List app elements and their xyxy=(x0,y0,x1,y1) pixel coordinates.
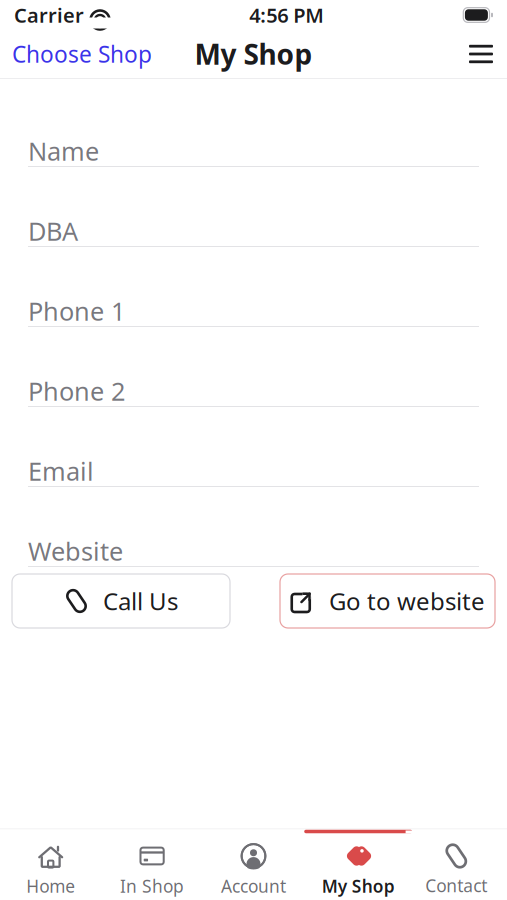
button[interactable]: Home xyxy=(0,829,101,900)
staticText: Phone 2 xyxy=(28,374,125,408)
staticText: In Shop xyxy=(120,874,184,897)
staticText: DBA xyxy=(28,214,78,248)
staticText: Go to website xyxy=(329,585,485,617)
staticText: Email xyxy=(28,454,94,488)
button[interactable]: Menu xyxy=(455,33,507,75)
button[interactable]: Choose Shop xyxy=(0,29,164,79)
staticText: My Shop xyxy=(322,874,395,897)
staticText: Contact xyxy=(425,874,487,897)
staticText: My Shop xyxy=(194,35,312,73)
button[interactable]: Call Us xyxy=(12,574,230,628)
staticText: Call Us xyxy=(103,585,178,617)
staticText: Home xyxy=(26,874,75,897)
staticText: Website xyxy=(28,534,123,568)
staticText: Name xyxy=(28,134,99,168)
staticText: Choose Shop xyxy=(12,39,152,69)
button[interactable]: My Shop xyxy=(304,829,406,900)
button[interactable]: Go to website xyxy=(280,574,495,628)
staticText: Account xyxy=(221,874,286,897)
staticText: Carrier xyxy=(14,2,84,28)
button[interactable]: In Shop xyxy=(101,829,203,900)
staticText: Phone 1 xyxy=(28,294,125,328)
button[interactable]: Contact xyxy=(406,830,507,900)
button[interactable]: Account xyxy=(203,829,304,900)
staticText: 4:56 PM xyxy=(249,2,324,28)
